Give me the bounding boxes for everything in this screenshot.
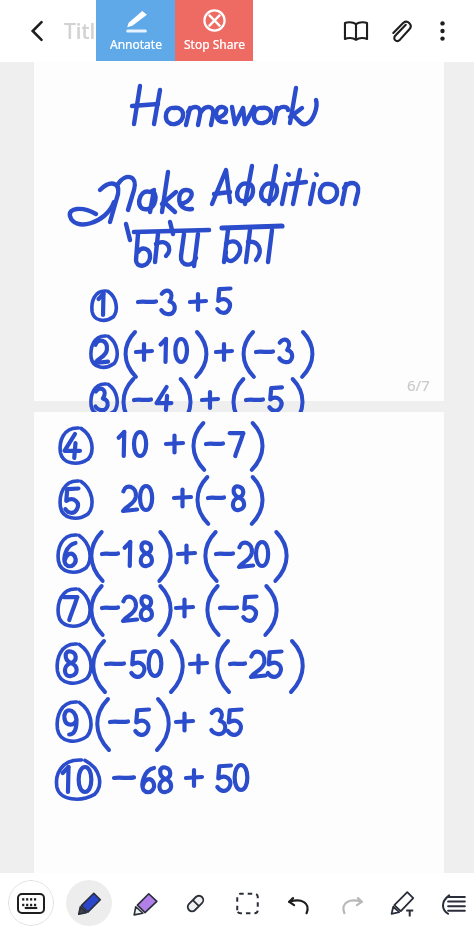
button[interactable]: Attach [378,9,422,53]
button[interactable]: Redo [330,882,372,924]
button[interactable]: List [432,882,474,924]
button[interactable]: Undo [278,882,320,924]
staticText: Stop Share [184,36,245,52]
button[interactable]: Text pen [382,882,424,924]
button[interactable]: Pen [66,880,112,926]
button[interactable]: Stop Share [175,0,253,61]
staticText: Annotate [110,36,162,52]
button[interactable]: Annotate [96,0,175,61]
button[interactable]: Select [226,882,268,924]
button[interactable]: More options [422,11,462,51]
button[interactable]: Book view [334,9,378,53]
button[interactable]: Back [16,9,60,53]
button[interactable]: Keyboard [8,880,54,926]
button[interactable]: Highlighter [124,882,166,924]
staticText: Title [64,17,108,46]
button[interactable]: Eraser [174,882,216,924]
staticText: 6/7 [407,375,430,395]
